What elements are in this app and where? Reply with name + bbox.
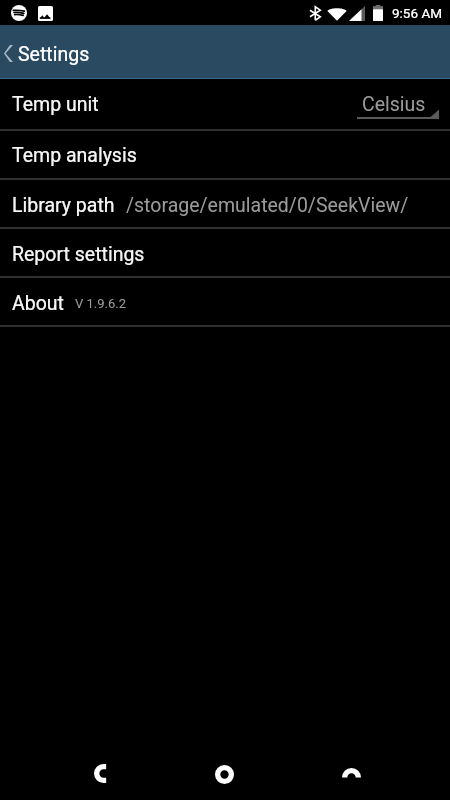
button[interactable]: Celsius <box>357 79 439 129</box>
button[interactable]: About <box>0 278 450 325</box>
staticText: About <box>12 292 64 315</box>
staticText: Settings <box>18 43 90 66</box>
button[interactable]: Recent apps <box>327 748 375 800</box>
button[interactable]: Back <box>79 748 127 800</box>
button[interactable]: Navigate up <box>0 25 450 78</box>
staticText: V 1.9.6.2 <box>75 296 127 311</box>
button[interactable]: Temp unit <box>0 79 450 129</box>
staticText: /storage/emulated/0/SeekView/ <box>126 194 409 217</box>
button[interactable]: Temp analysis <box>0 131 450 178</box>
button[interactable]: Home <box>200 748 248 800</box>
staticText: Celsius <box>362 93 426 116</box>
staticText: Temp analysis <box>12 144 137 167</box>
staticText: 9:56 AM <box>392 5 442 21</box>
staticText: Temp unit <box>12 93 99 116</box>
button[interactable]: Report settings <box>0 229 450 276</box>
button[interactable]: Library path <box>0 180 450 227</box>
staticText: Report settings <box>12 243 145 266</box>
staticText: Library path <box>12 194 115 217</box>
other: Navigate up <box>4 45 13 62</box>
